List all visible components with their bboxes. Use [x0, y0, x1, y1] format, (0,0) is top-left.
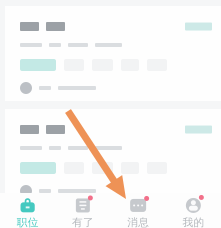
button[interactable]: 我的 [166, 193, 221, 228]
staticText: 职位 [17, 216, 39, 228]
staticText: 有了 [72, 216, 94, 228]
button[interactable] [0, 6, 221, 101]
button[interactable]: 职位 [0, 193, 55, 228]
button[interactable]: 有了 [55, 193, 110, 228]
button[interactable] [0, 109, 221, 204]
button[interactable]: 消息 [110, 193, 166, 228]
staticText: 消息 [127, 216, 149, 228]
staticText: 我的 [182, 216, 204, 228]
